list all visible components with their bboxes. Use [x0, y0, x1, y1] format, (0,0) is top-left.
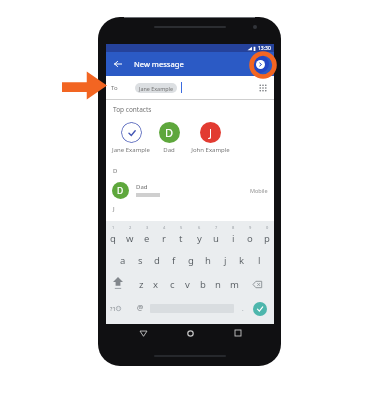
staticText: j [224, 254, 227, 267]
button[interactable]: Back [111, 57, 125, 71]
button[interactable]: v [179, 274, 195, 294]
button[interactable]: g [183, 250, 199, 270]
staticText: z [139, 278, 144, 291]
button[interactable]: Jane Example [135, 83, 177, 93]
staticText: g [188, 254, 194, 267]
button[interactable]: 3 [139, 225, 155, 245]
staticText: r [162, 232, 166, 245]
button[interactable]: Home [181, 324, 199, 342]
staticText: y [197, 232, 202, 245]
button[interactable]: D [139, 122, 199, 154]
staticText: 3 [146, 225, 149, 230]
staticText: ?1 [110, 305, 116, 312]
staticText: 1 [112, 225, 115, 230]
button[interactable]: s [132, 250, 148, 270]
staticText: p [264, 232, 270, 245]
staticText: D [113, 167, 118, 175]
button[interactable]: 1 [105, 225, 121, 245]
button[interactable]: 4 [156, 225, 172, 245]
button[interactable]: Dialpad [256, 81, 269, 94]
button[interactable]: Jane Example [101, 122, 161, 154]
button[interactable]: D [106, 178, 274, 202]
button[interactable]: Send highlight [249, 51, 277, 79]
staticText: v [185, 278, 190, 291]
staticText: Dad [163, 146, 175, 154]
staticText: 2 [129, 225, 132, 230]
staticText: 0 [266, 225, 269, 230]
button[interactable]: c [164, 274, 180, 294]
staticText: 5 [180, 225, 183, 230]
button[interactable]: a [115, 250, 131, 270]
staticText: d [154, 254, 160, 267]
staticText: J [209, 125, 213, 140]
button[interactable]: n [210, 274, 226, 294]
other: Pointer [62, 71, 107, 100]
staticText: @ [137, 303, 144, 313]
staticText: i [232, 232, 235, 245]
staticText: b [200, 278, 206, 291]
staticText: a [120, 254, 126, 267]
staticText: q [110, 232, 116, 245]
staticText: D [117, 185, 124, 197]
button[interactable]: h [200, 250, 216, 270]
button[interactable]: Enter [253, 302, 267, 316]
button[interactable]: 5 [173, 225, 189, 245]
button[interactable]: J [180, 122, 240, 154]
staticText: 7 [215, 225, 218, 230]
button[interactable]: d [149, 250, 165, 270]
staticText: o [247, 232, 253, 245]
staticText: u [213, 232, 219, 245]
staticText: . [242, 305, 244, 313]
button[interactable]: z [133, 274, 149, 294]
button[interactable]: 6 [191, 225, 207, 245]
staticText: k [239, 254, 245, 267]
staticText: f [172, 254, 176, 267]
staticText: New message [134, 59, 184, 69]
staticText: Mobile [250, 187, 268, 194]
button[interactable]: Back [134, 324, 152, 342]
staticText: 6 [198, 225, 201, 230]
button[interactable]: x [148, 274, 164, 294]
staticText: l [258, 254, 261, 267]
staticText: t [179, 232, 183, 245]
button[interactable]: 7 [208, 225, 224, 245]
staticText: h [205, 254, 211, 267]
staticText: John Example [191, 146, 230, 154]
button[interactable]: Recents [229, 324, 247, 342]
button[interactable]: Send [251, 55, 269, 73]
staticText: 9 [249, 225, 252, 230]
staticText: Top contacts [113, 105, 152, 114]
button[interactable]: j [217, 250, 233, 270]
button[interactable]: Backspace [249, 276, 265, 292]
staticText: s [138, 254, 143, 267]
button[interactable]: k [234, 250, 250, 270]
button[interactable]: 2 [122, 225, 138, 245]
staticText: Dad [136, 183, 148, 191]
staticText: c [170, 278, 175, 291]
button[interactable]: l [251, 250, 267, 270]
staticText: 13:30 [258, 45, 271, 52]
button[interactable]: m [226, 274, 242, 294]
button[interactable]: 0 [259, 225, 275, 245]
staticText: J [113, 205, 115, 213]
staticText: D [165, 125, 174, 140]
staticText: e [144, 232, 150, 245]
button[interactable]: Period [238, 304, 248, 313]
button[interactable]: f [166, 250, 182, 270]
button[interactable]: b [195, 274, 211, 294]
button[interactable]: @ [133, 300, 147, 316]
button[interactable]: Shift [110, 275, 126, 291]
staticText: m [230, 278, 239, 291]
staticText: To [111, 84, 118, 92]
staticText: n [215, 278, 221, 291]
button[interactable]: 8 [225, 225, 241, 245]
button[interactable]: ?1 [108, 300, 123, 316]
staticText: 8 [232, 225, 235, 230]
staticText: Jane Example [112, 146, 150, 154]
staticText: x [153, 278, 159, 291]
staticText: w [126, 232, 134, 245]
staticText: Jane Example [139, 85, 173, 92]
button[interactable]: 9 [242, 225, 258, 245]
staticText: 4 [163, 225, 166, 230]
